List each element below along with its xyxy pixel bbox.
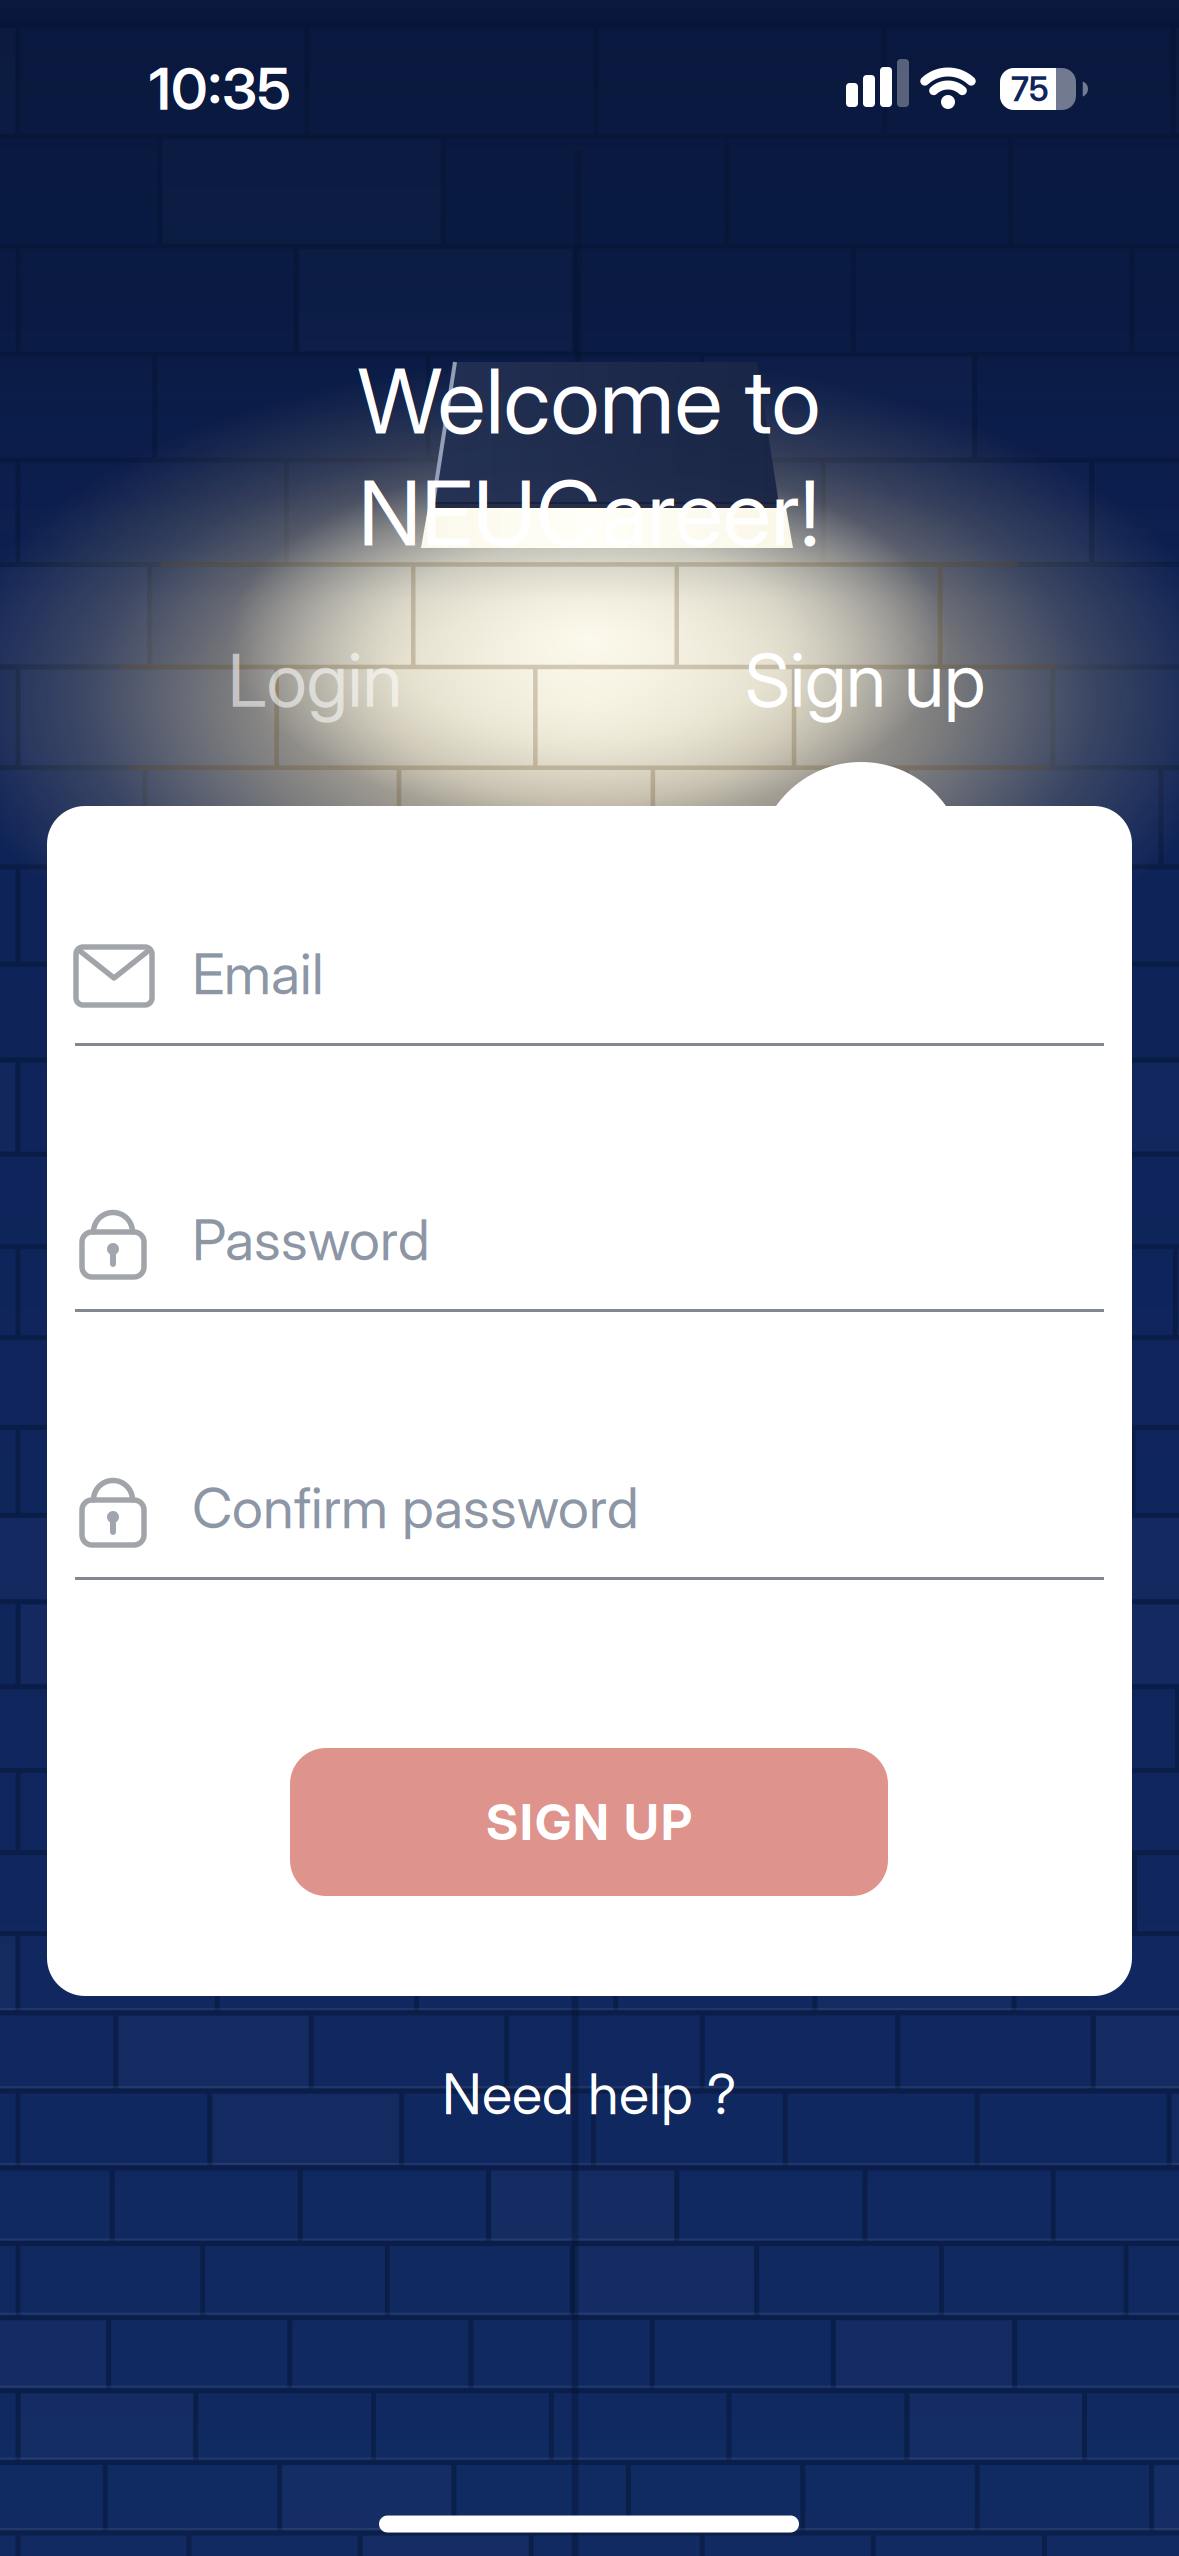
button[interactable]: Password xyxy=(75,1203,1104,1315)
button[interactable]: Email xyxy=(75,937,1104,1049)
staticText: Need help ? xyxy=(442,2061,736,2127)
staticText: Sign up xyxy=(745,637,985,723)
staticText: Confirm password xyxy=(192,1475,639,1541)
button[interactable]: Login xyxy=(145,625,485,735)
staticText: SIGN UP xyxy=(486,1793,692,1851)
button[interactable]: Sign up xyxy=(685,625,1045,735)
staticText: Email xyxy=(192,941,324,1007)
staticText: Welcome to xyxy=(357,348,820,454)
button[interactable]: SIGN UP xyxy=(290,1748,888,1896)
staticText: NEUCareer! xyxy=(358,460,820,566)
staticText: Password xyxy=(192,1207,430,1273)
staticText: 10:35 xyxy=(149,55,291,123)
button[interactable]: Need help ? xyxy=(329,2044,849,2144)
button[interactable]: Confirm password xyxy=(75,1471,1104,1583)
staticText: 75 xyxy=(1011,69,1049,109)
staticText: Login xyxy=(227,637,402,723)
